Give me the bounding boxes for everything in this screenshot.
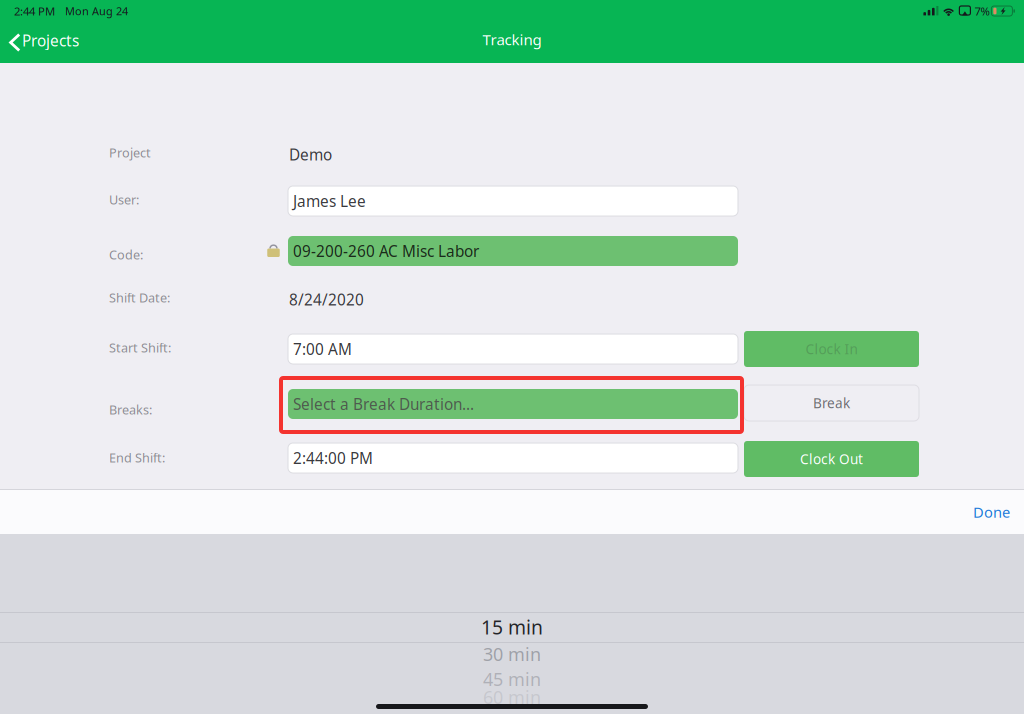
button[interactable]: Projects <box>0 26 92 59</box>
button[interactable]: Done <box>959 494 1024 530</box>
staticText: User: <box>109 191 139 208</box>
staticText: Clock In <box>805 340 857 358</box>
staticText: Breaks: <box>109 401 152 418</box>
staticText: 60 min <box>483 685 541 709</box>
staticText: Tracking <box>482 29 541 50</box>
button[interactable]: 60 min <box>0 684 1024 710</box>
staticText: 09-200-260 AC Misc Labor <box>293 241 479 261</box>
staticText: Code: <box>109 246 143 263</box>
staticText: 2:44:00 PM <box>293 448 373 468</box>
staticText: 7:00 AM <box>293 339 352 359</box>
button[interactable]: Break <box>744 385 919 421</box>
staticText: Demo <box>289 144 332 165</box>
staticText: Done <box>973 502 1010 522</box>
staticText: James Lee <box>293 191 366 211</box>
staticText: 45 min <box>483 667 541 691</box>
staticText: Projects <box>22 30 79 51</box>
staticText: Select a Break Duration... <box>293 394 474 414</box>
staticText: Clock Out <box>800 450 863 468</box>
staticText: Break <box>813 394 850 412</box>
staticText: Project <box>109 144 151 161</box>
button[interactable]: Clock In <box>744 331 919 367</box>
staticText: Start Shift: <box>109 339 171 356</box>
staticText: 30 min <box>483 642 541 666</box>
staticText: End Shift: <box>109 449 165 466</box>
button[interactable]: 30 min <box>0 641 1024 667</box>
staticText: 2:44 PM <box>14 3 55 19</box>
button[interactable]: Clock Out <box>744 441 919 477</box>
button[interactable]: 45 min <box>0 666 1024 692</box>
button[interactable]: 15 min <box>0 614 1024 640</box>
staticText: 15 min <box>481 614 543 640</box>
staticText: 7% <box>974 3 989 19</box>
staticText: Mon Aug 24 <box>65 4 128 18</box>
staticText: 8/24/2020 <box>289 289 364 310</box>
staticText: Shift Date: <box>109 289 170 306</box>
